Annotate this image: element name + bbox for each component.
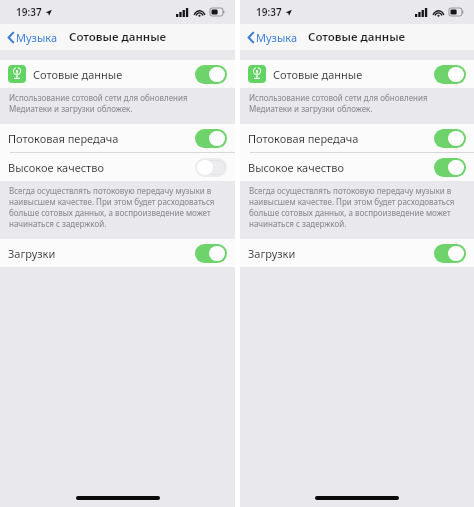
button[interactable]: Включено — [434, 65, 466, 84]
staticText: Сотовые данные — [308, 29, 406, 45]
staticText: Сотовые данные — [33, 67, 123, 82]
button[interactable]: Сотовые данные — [240, 60, 474, 88]
button[interactable]: Включено — [434, 158, 466, 177]
staticText: Использование сотовой сети для обновлени… — [9, 92, 221, 114]
button[interactable]: Включено — [195, 129, 227, 148]
staticText: Использование сотовой сети для обновлени… — [249, 92, 460, 114]
button[interactable]: Потоковая передача — [0, 124, 235, 152]
button[interactable]: Загрузки — [240, 239, 474, 267]
staticText: Сотовые данные — [69, 29, 167, 45]
staticText: Загрузки — [8, 246, 56, 261]
button[interactable]: Загрузки — [0, 239, 235, 267]
button[interactable]: Включено — [434, 244, 466, 263]
staticText: Всегда осуществлять потоковую передачу м… — [249, 185, 460, 229]
staticText: Музыка — [256, 30, 298, 45]
button[interactable]: Высокое качество — [0, 153, 235, 181]
staticText: Музыка — [16, 30, 58, 45]
staticText: Загрузки — [248, 246, 296, 261]
button[interactable]: Включено — [195, 244, 227, 263]
staticText: Высокое качество — [8, 160, 104, 175]
button[interactable]: Выключено — [195, 158, 227, 177]
staticText: Потоковая передача — [248, 131, 359, 146]
staticText: Всегда осуществлять потоковую передачу м… — [9, 185, 221, 229]
button[interactable]: Потоковая передача — [240, 124, 474, 152]
staticText: 19:37 — [16, 5, 42, 19]
staticText: Высокое качество — [248, 160, 344, 175]
button[interactable]: Музыка — [5, 28, 61, 47]
staticText: Потоковая передача — [8, 131, 119, 146]
staticText: Сотовые данные — [273, 67, 363, 82]
button[interactable]: Сотовые данные — [0, 60, 235, 88]
button[interactable]: Включено — [195, 65, 227, 84]
button[interactable]: Музыка — [245, 28, 301, 47]
staticText: 19:37 — [256, 5, 282, 19]
button[interactable]: Высокое качество — [240, 153, 474, 181]
button[interactable]: Включено — [434, 129, 466, 148]
